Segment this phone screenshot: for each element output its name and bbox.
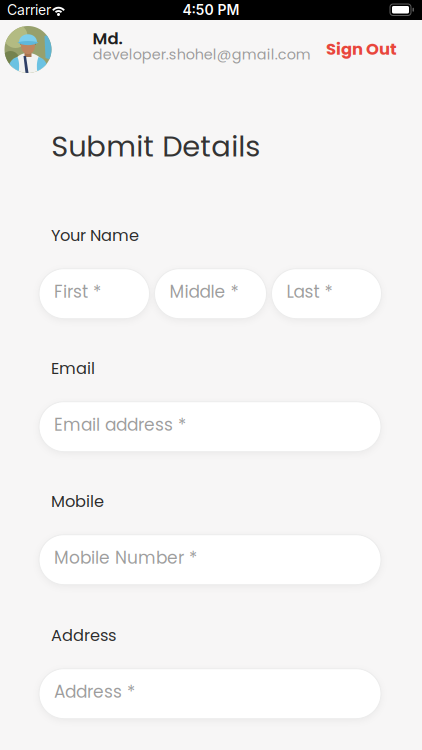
staticText: Address: [51, 624, 116, 647]
staticText: Md.: [92, 27, 122, 50]
button[interactable]: Middle *: [154, 269, 266, 319]
staticText: Submit Details: [51, 126, 260, 167]
button[interactable]: Email address *: [39, 402, 381, 452]
button[interactable]: Mobile Number *: [39, 535, 381, 585]
staticText: Mobile: [51, 490, 104, 513]
staticText: Last *: [286, 280, 332, 304]
button[interactable]: First *: [39, 269, 149, 319]
staticText: Carrier: [7, 1, 51, 18]
staticText: developer.shohel@gmail.com: [93, 44, 311, 65]
staticText: Address *: [54, 680, 135, 704]
button[interactable]: Address *: [39, 669, 381, 719]
staticText: First *: [54, 280, 101, 304]
staticText: 4:50 PM: [182, 1, 239, 18]
staticText: Middle *: [169, 280, 238, 304]
staticText: Mobile Number *: [54, 546, 197, 570]
staticText: Your Name: [51, 224, 139, 247]
staticText: Email address *: [54, 413, 186, 437]
staticText: Sign Out: [326, 38, 397, 61]
button[interactable]: Last *: [271, 269, 381, 319]
staticText: Email: [51, 357, 95, 380]
button[interactable]: Sign Out: [320, 32, 403, 67]
